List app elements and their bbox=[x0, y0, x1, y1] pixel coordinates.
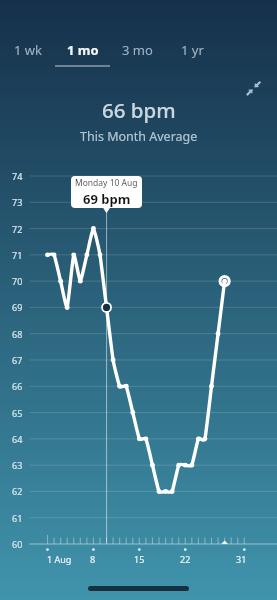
button[interactable]: 1 mo bbox=[55, 26, 110, 70]
staticText: 67 bbox=[12, 354, 23, 366]
staticText: 70 bbox=[12, 275, 23, 287]
staticText: 71 bbox=[12, 249, 23, 261]
staticText: 15 bbox=[134, 553, 145, 565]
staticText: This Month Average bbox=[80, 128, 198, 145]
staticText: 1 wk bbox=[14, 41, 42, 59]
staticText: 61 bbox=[12, 512, 23, 524]
staticText: Monday 10 Aug bbox=[75, 177, 138, 189]
staticText: 69 bbox=[12, 301, 23, 313]
button[interactable]: 1 yr bbox=[165, 26, 220, 70]
staticText: 1 mo bbox=[67, 41, 99, 59]
staticText: 8 bbox=[90, 553, 96, 565]
staticText: 68 bbox=[12, 328, 23, 340]
staticText: 1 yr bbox=[181, 41, 204, 59]
staticText: 1 Aug bbox=[47, 553, 72, 565]
staticText: 64 bbox=[12, 433, 23, 445]
staticText: 60 bbox=[12, 538, 23, 550]
staticText: 31 bbox=[236, 553, 247, 565]
staticText: 66 bpm bbox=[102, 96, 176, 124]
button[interactable]: 1 wk bbox=[0, 26, 55, 70]
staticText: 66 bbox=[12, 380, 23, 392]
button[interactable]: 3 mo bbox=[110, 26, 165, 70]
staticText: 65 bbox=[12, 407, 23, 419]
staticText: 73 bbox=[12, 196, 23, 208]
staticText: 72 bbox=[12, 223, 23, 235]
staticText: 63 bbox=[12, 459, 23, 471]
staticText: 74 bbox=[12, 170, 23, 182]
staticText: 3 mo bbox=[122, 41, 153, 59]
staticText: 69 bpm bbox=[83, 190, 131, 208]
staticText: 22 bbox=[180, 553, 191, 565]
staticText: 62 bbox=[12, 485, 23, 497]
button[interactable]: Collapse chart bbox=[240, 75, 267, 102]
